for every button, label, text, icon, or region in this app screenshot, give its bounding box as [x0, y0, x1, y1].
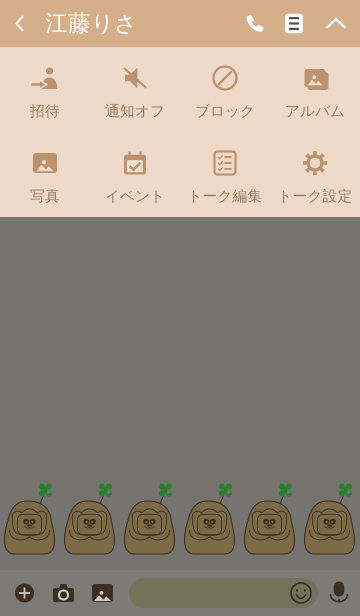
button[interactable]: 通知オフ — [90, 47, 180, 132]
button[interactable]: Call — [236, 0, 274, 46]
button[interactable]: More — [5, 570, 44, 616]
button[interactable]: Message field — [122, 578, 318, 608]
staticText: トーク設定 — [277, 187, 352, 205]
staticText: 通知オフ — [105, 102, 165, 120]
button[interactable]: Collapse menu — [314, 0, 358, 46]
staticText: アルバム — [285, 102, 345, 120]
button[interactable]: Notes — [274, 0, 314, 46]
button[interactable]: ブロック — [180, 47, 270, 132]
button[interactable]: 写真 — [0, 132, 90, 217]
button[interactable]: Voice message — [318, 570, 360, 616]
button[interactable]: イベント — [90, 132, 180, 217]
staticText: 江藤りさ — [45, 10, 137, 37]
staticText: 招待 — [30, 102, 60, 120]
staticText: 写真 — [30, 187, 60, 205]
button[interactable]: トーク設定 — [270, 132, 360, 217]
button[interactable]: Photos — [83, 570, 122, 616]
button[interactable]: Camera — [44, 570, 83, 616]
staticText: トーク編集 — [187, 187, 262, 205]
button[interactable]: アルバム — [270, 47, 360, 132]
button[interactable]: 招待 — [0, 47, 90, 132]
button[interactable]: トーク編集 — [180, 132, 270, 217]
staticText: イベント — [105, 187, 165, 205]
staticText: ブロック — [195, 102, 255, 120]
button[interactable]: Back — [4, 0, 36, 46]
